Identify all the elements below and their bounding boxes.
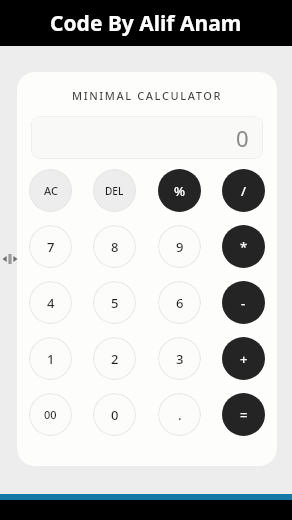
button[interactable]: 3: [158, 337, 201, 380]
button[interactable]: .: [158, 393, 201, 436]
button[interactable]: Resize handle: [4, 252, 16, 266]
button[interactable]: 8: [93, 225, 136, 268]
button[interactable]: DEL: [93, 169, 136, 212]
button[interactable]: 9: [158, 225, 201, 268]
button[interactable]: =: [222, 393, 265, 436]
button[interactable]: %: [158, 169, 201, 212]
button[interactable]: *: [222, 225, 265, 268]
button[interactable]: 0: [31, 116, 263, 159]
button[interactable]: 0: [93, 393, 136, 436]
staticText: 7: [47, 238, 55, 256]
staticText: 4: [47, 294, 55, 312]
staticText: Code By Alif Anam: [50, 9, 242, 38]
button[interactable]: 4: [29, 281, 72, 324]
button[interactable]: 5: [93, 281, 136, 324]
button[interactable]: +: [222, 337, 265, 380]
staticText: AC: [44, 183, 58, 198]
staticText: +: [240, 350, 248, 368]
button[interactable]: /: [222, 169, 265, 212]
staticText: 0: [111, 406, 119, 424]
staticText: *: [240, 238, 248, 256]
staticText: 1: [47, 350, 55, 368]
staticText: MINIMAL CALCULATOR: [17, 88, 277, 103]
staticText: 8: [111, 238, 119, 256]
staticText: =: [240, 406, 248, 424]
button[interactable]: 1: [29, 337, 72, 380]
button[interactable]: 2: [93, 337, 136, 380]
button[interactable]: -: [222, 281, 265, 324]
button[interactable]: 6: [158, 281, 201, 324]
staticText: 3: [176, 350, 184, 368]
staticText: 00: [44, 407, 57, 422]
button[interactable]: 00: [29, 393, 72, 436]
staticText: -: [241, 294, 246, 312]
staticText: 6: [176, 294, 184, 312]
staticText: DEL: [105, 184, 124, 198]
staticText: 9: [176, 238, 184, 256]
staticText: 0: [236, 123, 249, 153]
staticText: 2: [111, 350, 119, 368]
staticText: .: [178, 406, 182, 424]
button[interactable]: AC: [29, 169, 72, 212]
staticText: %: [174, 182, 186, 200]
staticText: 5: [111, 294, 119, 312]
button[interactable]: 7: [29, 225, 72, 268]
staticText: /: [241, 182, 247, 200]
